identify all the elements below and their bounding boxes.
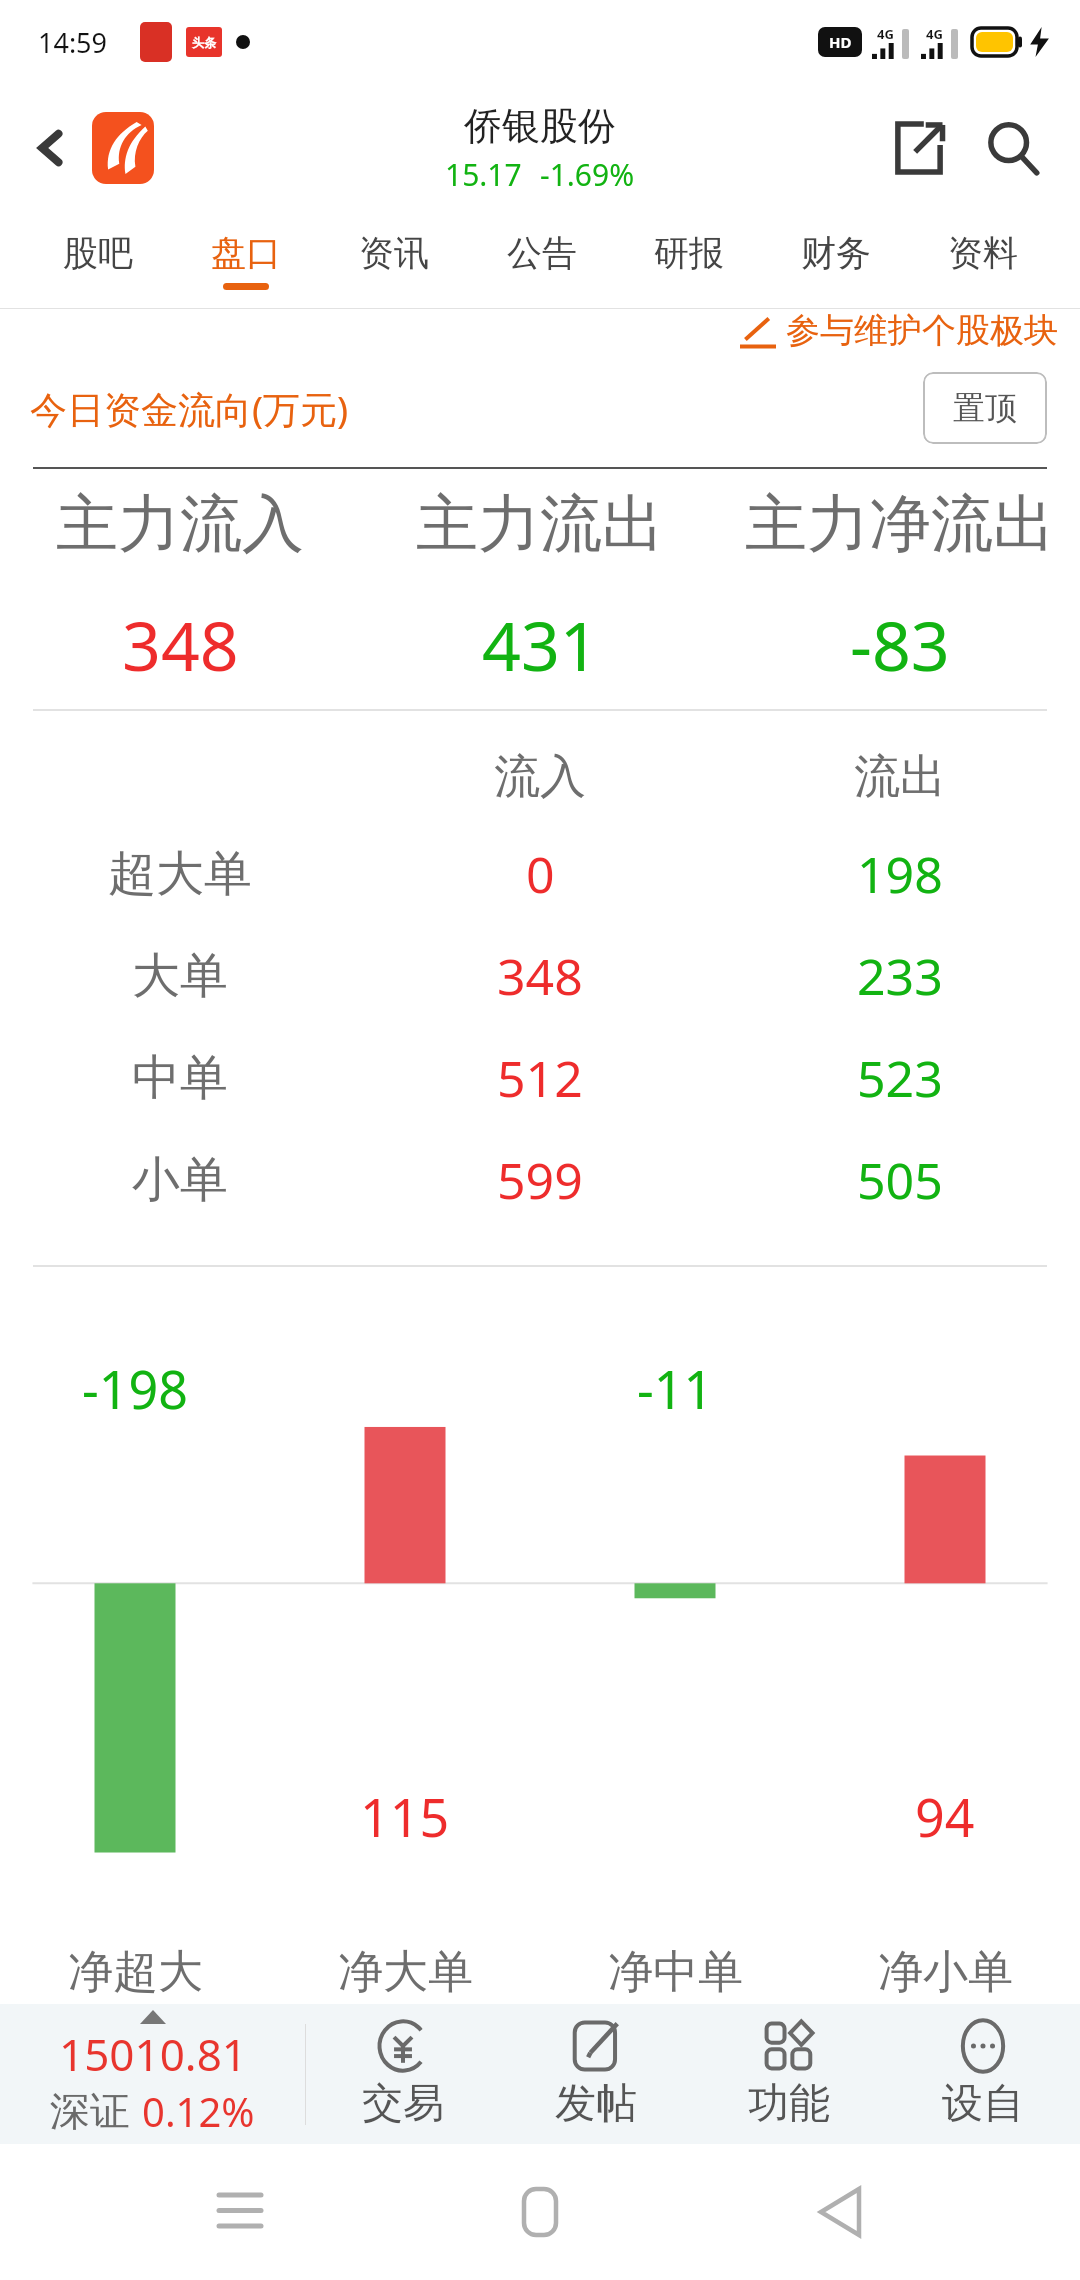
button[interactable]: 股吧 <box>24 212 172 308</box>
staticText: 512 <box>497 1044 583 1112</box>
staticText: 115 <box>360 1781 450 1852</box>
button[interactable]: 交易 <box>306 2004 499 2144</box>
button[interactable]: 小单 <box>0 1129 1080 1231</box>
staticText: 431 <box>482 598 599 691</box>
staticText: 股吧 <box>63 231 133 275</box>
button[interactable]: Share <box>880 109 958 187</box>
button[interactable]: 置顶 <box>923 372 1047 444</box>
button[interactable]: Recent apps <box>180 2152 300 2272</box>
staticText: 交易 <box>362 2078 444 2130</box>
staticText: 设自 <box>942 2078 1024 2130</box>
staticText: 599 <box>497 1146 583 1214</box>
staticText: 今日资金流向(万元) <box>30 383 349 434</box>
staticText: 深证 <box>50 2086 130 2136</box>
button[interactable]: 设自 <box>886 2004 1080 2144</box>
staticText: 功能 <box>748 2078 830 2130</box>
staticText: 15.17 <box>445 154 522 195</box>
button[interactable]: App home <box>92 112 154 184</box>
button[interactable]: 参与维护个股极块 <box>740 309 1058 349</box>
staticText: 主力净流出 <box>745 485 1055 563</box>
button[interactable]: 超大单 <box>0 823 1080 925</box>
staticText: 净中单 <box>608 1944 743 2001</box>
button[interactable]: Back <box>780 2152 900 2272</box>
staticText: 小单 <box>132 1150 228 1210</box>
button[interactable]: 资料 <box>909 212 1056 308</box>
button[interactable]: 中单 <box>0 1027 1080 1129</box>
staticText: 研报 <box>654 231 724 275</box>
staticText: 主力流出 <box>416 485 664 563</box>
staticText: 净超大 <box>68 1944 203 2001</box>
staticText: -83 <box>850 598 950 691</box>
button[interactable]: 功能 <box>692 2004 886 2144</box>
button[interactable]: 研报 <box>615 212 762 308</box>
staticText: 侨银股份 <box>464 102 616 150</box>
button[interactable]: 15010.81 <box>0 2004 305 2144</box>
staticText: HD <box>829 32 852 52</box>
staticText: 置顶 <box>953 388 1017 428</box>
staticText: 4G <box>926 25 943 43</box>
staticText: -198 <box>82 1353 188 1424</box>
staticText: 参与维护个股极块 <box>786 309 1058 349</box>
staticText: -11 <box>637 1353 714 1424</box>
staticText: 0 <box>526 840 555 908</box>
staticText: 348 <box>122 598 239 691</box>
button[interactable]: Search <box>972 107 1054 189</box>
staticText: 流出 <box>854 748 946 806</box>
staticText: 财务 <box>801 231 871 275</box>
staticText: 94 <box>915 1781 975 1852</box>
button[interactable]: 资讯 <box>320 212 468 308</box>
button[interactable]: 大单 <box>0 925 1080 1027</box>
staticText: 超大单 <box>108 844 252 904</box>
staticText: 发帖 <box>555 2078 637 2130</box>
staticText: 中单 <box>132 1048 228 1108</box>
staticText: -1.69% <box>540 154 635 195</box>
staticText: 523 <box>857 1044 943 1112</box>
staticText: 348 <box>497 942 583 1010</box>
staticText: 198 <box>857 840 943 908</box>
staticText: 资料 <box>948 231 1018 275</box>
button[interactable]: 发帖 <box>499 2004 692 2144</box>
staticText: 4G <box>877 25 894 43</box>
staticText: 0.12% <box>142 2084 255 2138</box>
staticText: 盘口 <box>211 231 281 275</box>
staticText: 15010.81 <box>59 2024 247 2084</box>
staticText: 公告 <box>507 231 577 275</box>
staticText: 净小单 <box>878 1944 1013 2001</box>
staticText: 净大单 <box>338 1944 473 2001</box>
button[interactable]: 盘口 <box>172 212 320 308</box>
staticText: 505 <box>857 1146 943 1214</box>
staticText: 大单 <box>132 946 228 1006</box>
staticText: 资讯 <box>359 231 429 275</box>
staticText: 233 <box>857 942 943 1010</box>
staticText: 主力流入 <box>56 485 304 563</box>
button[interactable]: 财务 <box>762 212 909 308</box>
staticText: 14:59 <box>38 24 108 61</box>
button[interactable]: Back <box>12 109 90 187</box>
staticText: 头条 <box>192 35 216 50</box>
button[interactable]: Home <box>480 2152 600 2272</box>
button[interactable]: 公告 <box>468 212 615 308</box>
staticText: 流入 <box>494 748 586 806</box>
